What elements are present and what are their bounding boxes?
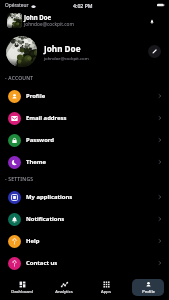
staticText: Contact us [26,259,58,267]
staticText: My applications [26,193,73,201]
staticText: Help [26,237,40,245]
button[interactable]: Apps [90,279,122,296]
staticText: 4:02 PM [73,2,93,9]
staticText: Dashboard [11,289,33,295]
staticText: John Doe [24,13,52,21]
button[interactable]: Notifications [0,208,169,230]
staticText: Email address [26,114,67,122]
button[interactable]: Edit profile [148,45,161,58]
button[interactable]: Email address [0,107,169,129]
button[interactable]: Profile [0,85,169,107]
button[interactable]: My applications [0,186,169,208]
button[interactable]: Theme [0,151,169,173]
button[interactable]: Help [0,230,169,252]
staticText: Theme [26,158,47,166]
staticText: Notifications [26,215,65,223]
button[interactable]: Analytics [48,279,80,296]
staticText: - SETTINGS [5,176,34,183]
staticText: Opérateur [5,2,29,9]
button[interactable]: Dashboard [6,279,38,296]
staticText: Profile [26,92,46,100]
button[interactable]: Contact us [0,252,169,274]
staticText: Profile [142,289,155,295]
button[interactable]: Profile [132,279,164,296]
button[interactable]: Notifications [145,14,159,28]
staticText: Apps [101,289,111,295]
button[interactable]: Password [0,129,169,151]
staticText: - ACCOUNT [5,75,34,82]
staticText: Password [26,136,55,144]
staticText: Analytics [55,289,73,295]
button[interactable]: Account avatar [7,13,22,28]
staticText: John Doe [44,43,81,54]
staticText: johndoe@cockpit.com [44,55,89,61]
staticText: johndoe@cockpit.com [24,21,74,28]
